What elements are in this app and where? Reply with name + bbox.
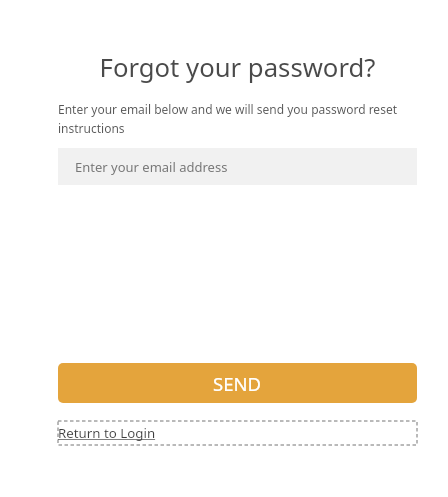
staticText: Enter your email below and we will send … [58,101,417,136]
button[interactable]: Return to Login [58,421,417,445]
button[interactable]: SEND [58,363,417,403]
button[interactable]: Enter your email address [58,148,417,185]
staticText: Return to Login [58,424,156,442]
staticText: Forgot your password? [58,50,417,85]
staticText: Enter your email address [75,158,228,176]
staticText: SEND [213,371,262,396]
